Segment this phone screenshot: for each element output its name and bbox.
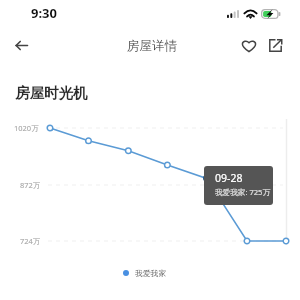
staticText: 1020万 — [14, 123, 39, 133]
button[interactable]: Share — [265, 35, 286, 56]
button[interactable]: Favorite — [238, 35, 259, 56]
staticText: 房屋时光机 — [15, 84, 88, 102]
staticText: 872万 — [20, 180, 41, 190]
staticText: 房屋详情 — [127, 38, 177, 54]
staticText: 我爱我家 — [135, 268, 167, 278]
button[interactable]: Back — [8, 32, 34, 58]
staticText: 09-28 — [215, 171, 243, 185]
staticText: 我爱我家: 725万 — [215, 187, 271, 197]
staticText: 9:30 — [31, 4, 57, 22]
staticText: 724万 — [20, 236, 41, 246]
